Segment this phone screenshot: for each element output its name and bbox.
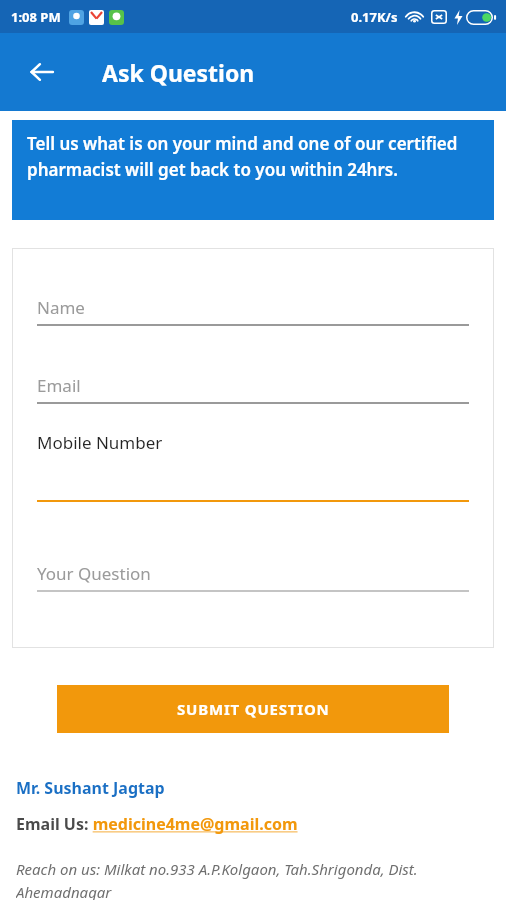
- staticText: Your Question: [37, 562, 151, 585]
- staticText: Name: [37, 296, 85, 319]
- button[interactable]: Your Question: [37, 562, 469, 592]
- staticText: Email: [37, 374, 81, 397]
- staticText: Ask Question: [102, 57, 255, 88]
- staticText: SUBMIT QUESTION: [177, 699, 330, 719]
- button[interactable]: Mobile Number: [37, 431, 469, 502]
- button[interactable]: Email Us: medicine4me@gmail.com: [16, 813, 298, 835]
- button[interactable]: Email: [37, 374, 469, 404]
- button[interactable]: Mr. Sushant Jagtap: [16, 777, 165, 799]
- button[interactable]: SUBMIT QUESTION: [57, 685, 449, 733]
- staticText: Mobile Number: [37, 431, 163, 454]
- staticText: Reach on us: Milkat no.933 A.P.Kolgaon, …: [16, 859, 498, 900]
- staticText: Tell us what is on your mind and one of …: [27, 132, 482, 181]
- staticText: 0.17K/s: [351, 8, 398, 26]
- button[interactable]: Name: [37, 296, 469, 326]
- staticText: 1:08 PM: [11, 8, 61, 26]
- button[interactable]: Back: [18, 48, 66, 96]
